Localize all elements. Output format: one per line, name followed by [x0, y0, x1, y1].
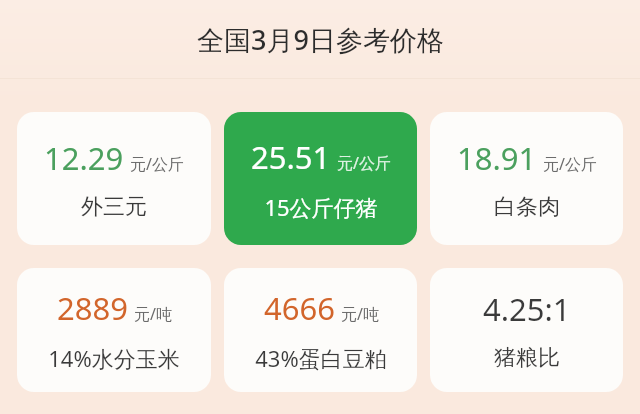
staticText: 外三元 [81, 193, 147, 221]
staticText: 元/公斤 [337, 152, 391, 174]
button[interactable]: 25.51 [224, 112, 417, 245]
button[interactable]: 4666 [224, 268, 417, 392]
staticText: 元/公斤 [130, 153, 184, 175]
staticText: 4666 [264, 287, 335, 329]
staticText: 猪粮比 [494, 344, 560, 372]
staticText: 全国3月9日参考价格 [197, 21, 444, 58]
staticText: 43%蛋白豆粕 [255, 343, 387, 373]
button[interactable]: 4.25:1 [430, 268, 623, 392]
staticText: 4.25:1 [483, 288, 571, 330]
staticText: 元/公斤 [543, 153, 597, 175]
staticText: 元/吨 [341, 303, 379, 325]
staticText: 12.29 [44, 137, 124, 179]
staticText: 白条肉 [494, 193, 560, 221]
staticText: 25.51 [251, 136, 331, 178]
staticText: 2889 [57, 287, 128, 329]
button[interactable]: 2889 [17, 268, 211, 392]
staticText: 15公斤仔猪 [264, 192, 378, 222]
staticText: 14%水分玉米 [48, 343, 180, 373]
button[interactable]: 12.29 [17, 112, 211, 245]
button[interactable]: 18.91 [430, 112, 623, 245]
staticText: 元/吨 [134, 303, 172, 325]
staticText: 18.91 [457, 137, 537, 179]
